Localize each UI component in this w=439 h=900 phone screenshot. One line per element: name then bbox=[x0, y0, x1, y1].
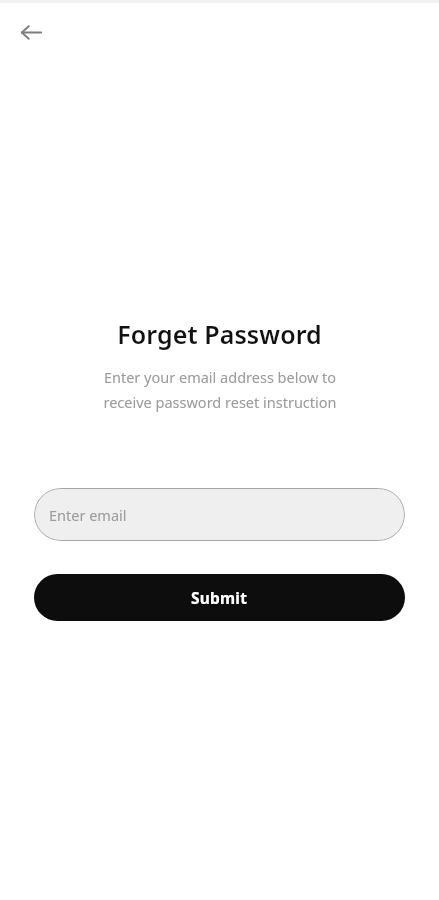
staticText: Forget Password bbox=[117, 317, 322, 351]
button[interactable]: Enter email bbox=[34, 488, 405, 541]
staticText: Enter your email address below to receiv… bbox=[103, 367, 337, 412]
staticText: Enter email bbox=[49, 505, 127, 525]
button[interactable]: Back bbox=[9, 10, 53, 54]
staticText: Submit bbox=[191, 587, 248, 608]
button[interactable]: Submit bbox=[34, 574, 405, 621]
